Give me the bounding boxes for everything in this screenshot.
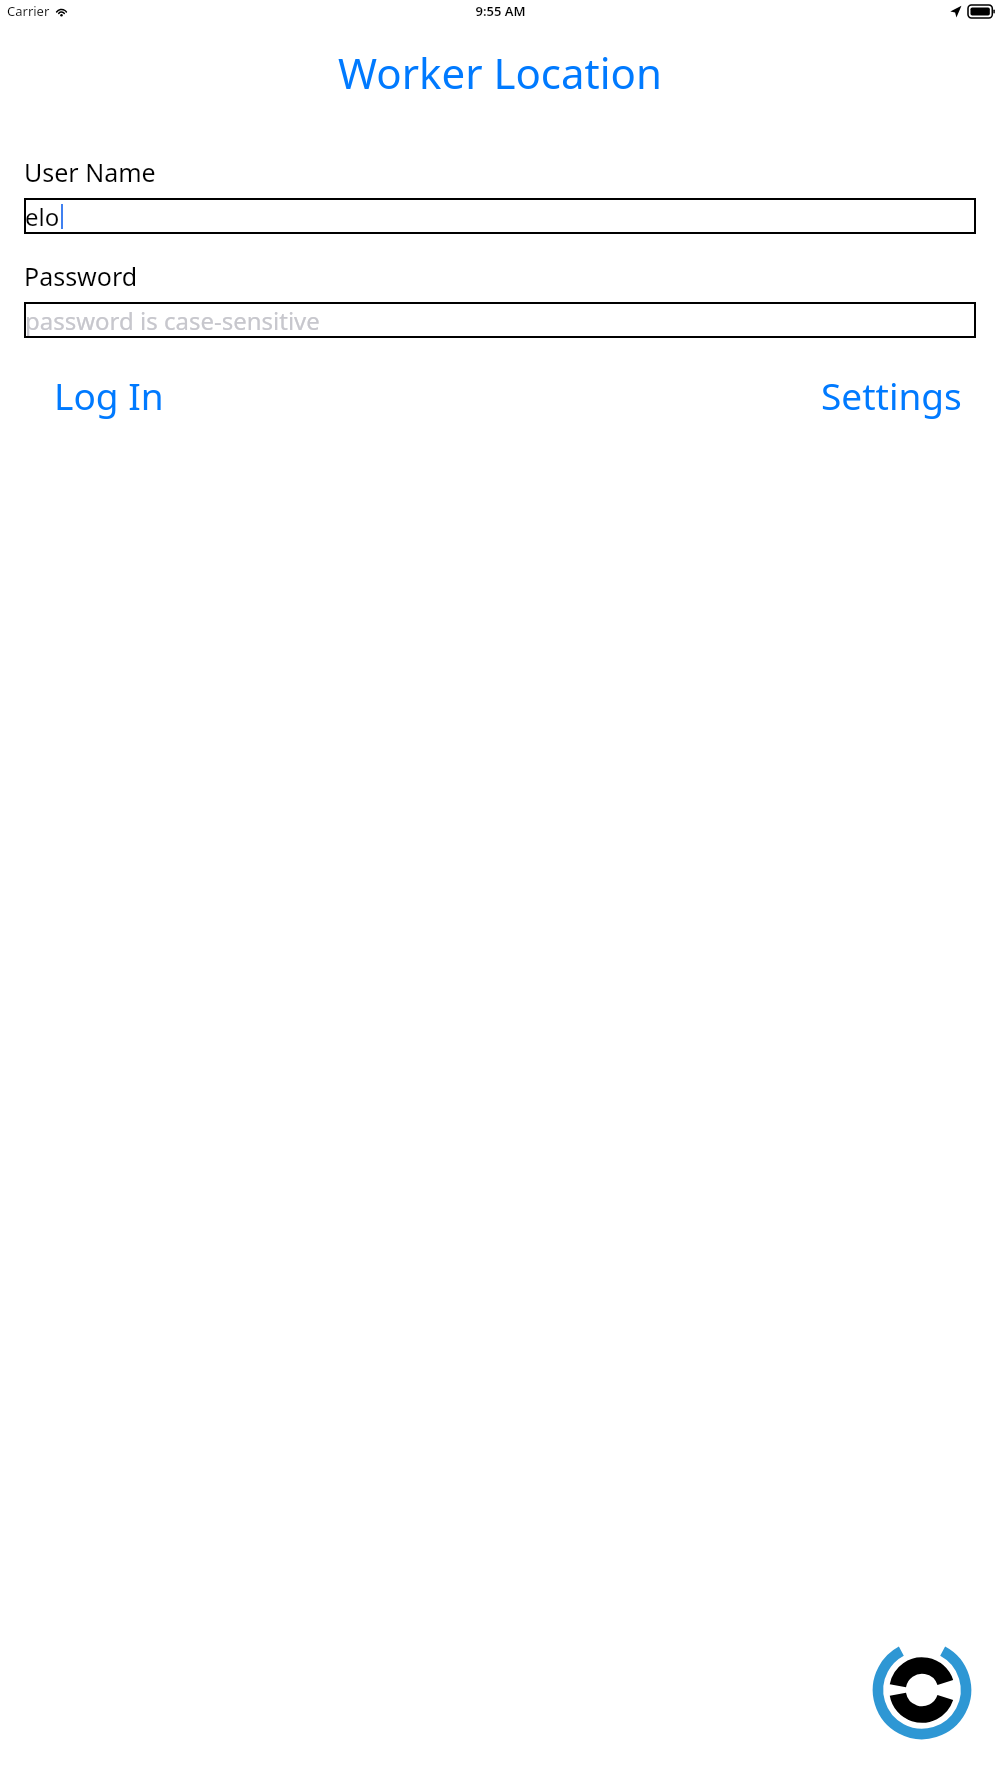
staticText: elo [25, 200, 60, 233]
staticText: Worker Location [0, 44, 1000, 101]
staticText: Settings [821, 370, 962, 420]
staticText: Password [24, 259, 138, 293]
other: App logo [872, 1640, 972, 1740]
staticText: 9:55 AM [475, 2, 526, 20]
staticText: password is case-sensitive [25, 304, 320, 337]
button[interactable]: password is case-sensitive [24, 302, 976, 338]
button[interactable]: Log In [24, 366, 172, 424]
button[interactable]: elo [24, 198, 976, 234]
staticText: Log In [54, 370, 164, 420]
staticText: Carrier [7, 2, 50, 20]
staticText: User Name [24, 155, 156, 189]
button[interactable]: Settings [813, 366, 976, 424]
